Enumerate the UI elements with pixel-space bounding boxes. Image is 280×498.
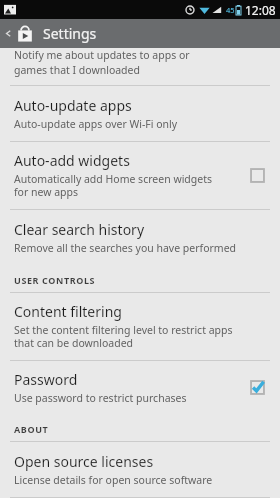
- staticText: Set the content filtering level to restr…: [14, 323, 233, 350]
- button[interactable]: Navigate up: [0, 19, 280, 48]
- staticText: Notify me about updates to apps or: [14, 48, 190, 62]
- staticText: Clear search history: [14, 220, 145, 239]
- staticText: ABOUT: [14, 423, 49, 435]
- staticText: License details for open source software: [14, 473, 213, 487]
- button[interactable]: Password: [0, 361, 280, 414]
- button[interactable]: Content filtering: [0, 293, 280, 360]
- button[interactable]: Clear search history: [0, 210, 280, 265]
- staticText: Automatically add Home screen widgets fo…: [14, 172, 212, 199]
- button[interactable]: Unchecked: [249, 167, 266, 184]
- staticText: Auto-update apps over Wi-Fi only: [14, 117, 178, 131]
- button[interactable]: Notify me about updates to apps or: [0, 48, 280, 85]
- staticText: USER CONTROLS: [14, 274, 96, 286]
- staticText: Use password to restrict purchases: [14, 391, 187, 405]
- staticText: Password: [14, 370, 78, 389]
- staticText: Settings: [43, 24, 97, 43]
- staticText: Content filtering: [14, 302, 122, 321]
- button[interactable]: Open source licenses: [0, 442, 280, 497]
- staticText: Open source licenses: [14, 452, 154, 471]
- staticText: Auto-update apps: [14, 96, 132, 115]
- staticText: Remove all the searches you have perform…: [14, 241, 237, 255]
- button[interactable]: Auto-update apps: [0, 86, 280, 141]
- button[interactable]: Checked: [249, 379, 266, 396]
- staticText: 12:08: [245, 2, 276, 18]
- staticText: 45: [226, 5, 235, 15]
- button[interactable]: Auto-add widgets: [0, 142, 280, 209]
- staticText: Auto-add widgets: [14, 151, 130, 170]
- staticText: games that I downloaded: [14, 63, 140, 77]
